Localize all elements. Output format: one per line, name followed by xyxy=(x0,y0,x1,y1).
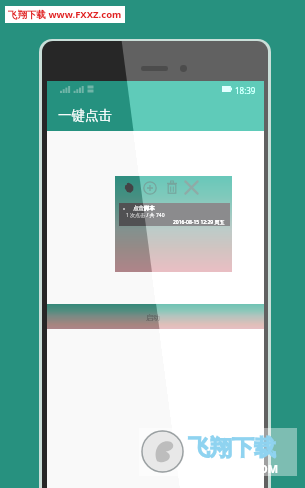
staticText: 点击脚本 xyxy=(133,205,155,212)
button[interactable]: 启动 xyxy=(47,304,264,329)
button[interactable]: Close xyxy=(182,178,201,197)
staticText: 飞翔下载 xyxy=(188,434,276,462)
staticText: 飞翔下载 www.FXXZ.com xyxy=(8,8,122,21)
staticText: 一键点击 xyxy=(58,107,112,124)
button[interactable]: Delete xyxy=(164,179,179,196)
staticText: 2016-08-15 12:29 周五 xyxy=(173,219,225,226)
staticText: 1 次点击 / 共 740 xyxy=(126,212,165,219)
staticText: WWW.FXXZ.COM xyxy=(188,461,279,476)
button[interactable]: 点击脚本 xyxy=(119,203,230,226)
staticText: 18:39 xyxy=(235,85,256,96)
button[interactable]: Add xyxy=(142,179,158,196)
staticText: 启动 xyxy=(146,313,160,322)
button[interactable]: Record touch xyxy=(121,179,136,196)
